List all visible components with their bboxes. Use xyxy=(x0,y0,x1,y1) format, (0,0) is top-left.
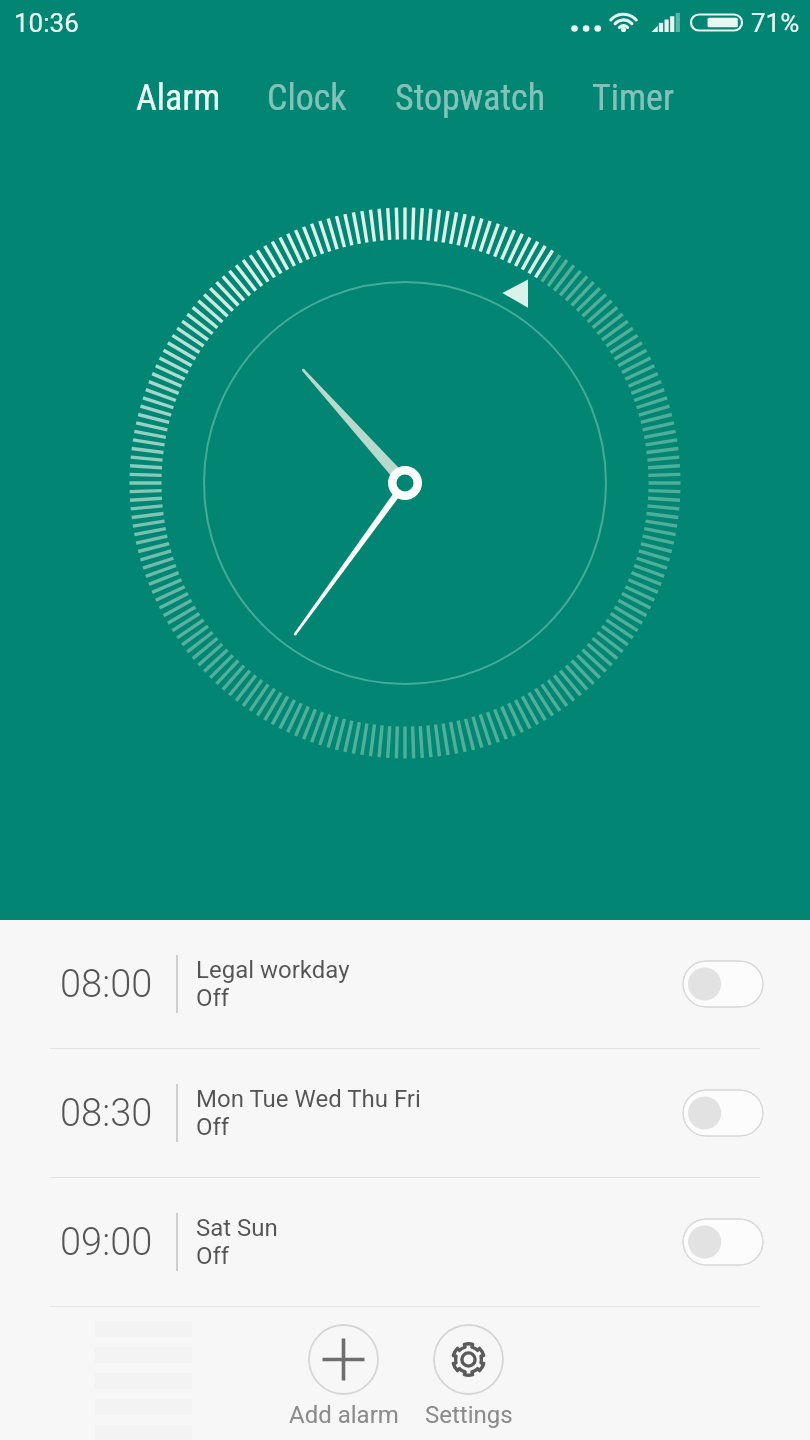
staticText: 08:30 xyxy=(60,1091,153,1136)
button[interactable]: Add alarm xyxy=(278,1324,409,1429)
staticText: Off xyxy=(196,1242,230,1270)
staticText: 08:00 xyxy=(60,962,153,1007)
staticText: Sat Sun xyxy=(196,1214,278,1242)
staticText: Off xyxy=(196,1113,230,1141)
button[interactable]: 09:00 xyxy=(0,1178,810,1306)
staticText: Alarm xyxy=(136,77,221,119)
staticText: Settings xyxy=(425,1401,513,1429)
staticText: Clock xyxy=(267,77,347,119)
staticText: 71% xyxy=(751,8,800,38)
button[interactable]: Clock xyxy=(265,69,349,127)
button[interactable]: 08:00 xyxy=(0,920,810,1048)
staticText: 10:36 xyxy=(14,8,79,38)
button[interactable]: Toggle alarm xyxy=(682,1089,764,1137)
staticText: Legal workday xyxy=(196,956,350,984)
button[interactable]: 08:30 xyxy=(0,1049,810,1177)
staticText: Timer xyxy=(592,77,674,119)
staticText: Stopwatch xyxy=(395,77,546,119)
staticText: 09:00 xyxy=(60,1220,153,1265)
staticText: Off xyxy=(196,984,230,1012)
staticText: Add alarm xyxy=(289,1401,399,1429)
button[interactable]: Toggle alarm xyxy=(682,1218,764,1266)
button[interactable]: Stopwatch xyxy=(393,69,548,127)
button[interactable]: Settings xyxy=(403,1324,534,1429)
button[interactable]: Alarm xyxy=(134,69,223,127)
staticText: Mon Tue Wed Thu Fri xyxy=(196,1085,421,1113)
button[interactable]: Timer xyxy=(590,69,676,127)
button[interactable]: Toggle alarm xyxy=(682,960,764,1008)
